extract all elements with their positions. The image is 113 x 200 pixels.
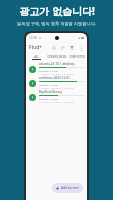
staticText: Paused • 1.4 GB xyxy=(39,83,58,86)
staticText: Big Buck Bunny xyxy=(39,90,63,94)
staticText: 1.2 MB/s • 210 KB/s • 0.8 MB/s xyxy=(39,101,74,104)
button[interactable]: Filter xyxy=(69,45,75,51)
staticText: 12:30 xyxy=(29,36,37,40)
staticText: 1.2 MB/s • 210 KB/s • 0.8 MB/s xyxy=(39,87,74,90)
staticText: Flud+ xyxy=(29,44,43,51)
button[interactable]: ubuntu-23.10.1-desktop-amd64.iso xyxy=(26,62,87,76)
staticText: archlinux-2023-12-01-x86_64.iso xyxy=(39,76,84,80)
staticText: DOWNLOADING xyxy=(47,55,67,59)
staticText: 1.2 MB/s • 210 KB/s • 0.8 MB/s xyxy=(39,73,74,76)
button[interactable]: DOWNLOADING xyxy=(47,53,67,60)
button[interactable]: Sort xyxy=(60,45,66,51)
staticText: COMPLETED xyxy=(69,55,85,59)
button[interactable]: Big Buck Bunny xyxy=(26,90,87,104)
staticText: ubuntu-23.10.1-desktop-amd64.iso xyxy=(39,62,84,66)
button[interactable]: More options xyxy=(78,45,84,51)
button[interactable]: Search xyxy=(51,45,57,51)
staticText: Paused • 1.4 GB xyxy=(39,69,58,72)
staticText: 일회성 구매, 앱의 향후 개발을 지원합니다. xyxy=(17,21,96,27)
staticText: Add torrent xyxy=(61,186,79,190)
staticText: 광고가 없습니다! xyxy=(19,4,95,18)
button[interactable]: archlinux-2023-12-01-x86_64.iso xyxy=(26,76,87,90)
button[interactable]: Add torrent xyxy=(52,183,83,193)
button[interactable]: COMPLETED xyxy=(67,53,87,60)
button[interactable]: ALL xyxy=(26,53,47,60)
staticText: ALL xyxy=(34,55,39,59)
staticText: Paused • 1.4 GB xyxy=(39,97,58,100)
